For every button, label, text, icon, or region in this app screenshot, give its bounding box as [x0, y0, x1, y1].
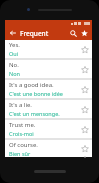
- staticText: Crois-moi: [9, 130, 34, 137]
- staticText: Frequent Senten…: [20, 29, 68, 38]
- button[interactable]: Yes.: [5, 40, 92, 58]
- staticText: Bien sûr: [9, 150, 31, 157]
- staticText: Trust me.: [9, 121, 36, 129]
- button[interactable]: No.: [5, 60, 92, 78]
- button[interactable]: Add to favourites: [78, 103, 91, 116]
- button[interactable]: Favourites: [79, 28, 90, 39]
- button[interactable]: Add to favourites: [78, 63, 91, 76]
- staticText: It's a good idea.: [9, 81, 54, 89]
- staticText: No.: [9, 61, 19, 69]
- button[interactable]: Search: [68, 28, 79, 39]
- button[interactable]: Add to favourites: [78, 83, 91, 96]
- staticText: Oui: [9, 50, 19, 57]
- button[interactable]: Trust me.: [5, 120, 92, 138]
- button[interactable]: Navigate up: [8, 28, 18, 38]
- staticText: Of course.: [9, 141, 38, 149]
- button[interactable]: It's a lie.: [5, 100, 92, 118]
- button[interactable]: Of course.: [5, 140, 92, 157]
- staticText: C'est un mensonge.: [9, 110, 60, 117]
- staticText: It's a lie.: [9, 101, 32, 109]
- button[interactable]: It's a good idea.: [5, 80, 92, 98]
- button[interactable]: Add to favourites: [78, 43, 91, 56]
- staticText: Non: [9, 70, 20, 77]
- staticText: Yes.: [9, 41, 20, 49]
- staticText: C'est une bonne idée: [9, 90, 63, 97]
- button[interactable]: Add to favourites: [78, 142, 91, 155]
- button[interactable]: Add to favourites: [78, 123, 91, 136]
